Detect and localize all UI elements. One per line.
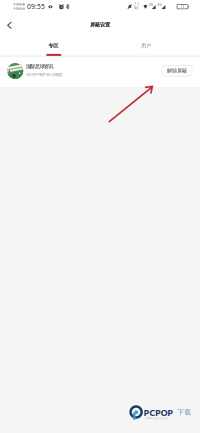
- staticText: 72: [180, 5, 184, 8]
- staticText: PCPOP: [144, 406, 173, 419]
- staticText: 屏蔽设置: [90, 21, 110, 28]
- staticText: 7.1: [134, 3, 139, 6]
- staticText: K/s: [134, 6, 138, 10]
- button[interactable]: 专区: [0, 0, 200, 433]
- button[interactable]: 用户: [0, 0, 200, 433]
- staticText: 中国移动: [13, 7, 25, 10]
- staticText: www.pcpop.com: [146, 416, 168, 420]
- staticText: 下载: [178, 408, 192, 416]
- staticText: 4G: [149, 3, 153, 6]
- staticText: 专区: [48, 42, 58, 49]
- staticText: 09:55: [27, 2, 45, 11]
- staticText: 解除屏蔽: [167, 67, 187, 74]
- staticText: 4G: [158, 3, 162, 6]
- button[interactable]: 解除屏蔽: [0, 0, 200, 433]
- staticText: 18.9万个帖子 20.1万成员: [26, 72, 62, 77]
- staticText: 国际足球资讯: [26, 63, 53, 70]
- button[interactable]: 返回: [0, 0, 200, 433]
- staticText: 中国联通: [13, 3, 25, 6]
- staticText: 用户: [141, 42, 151, 49]
